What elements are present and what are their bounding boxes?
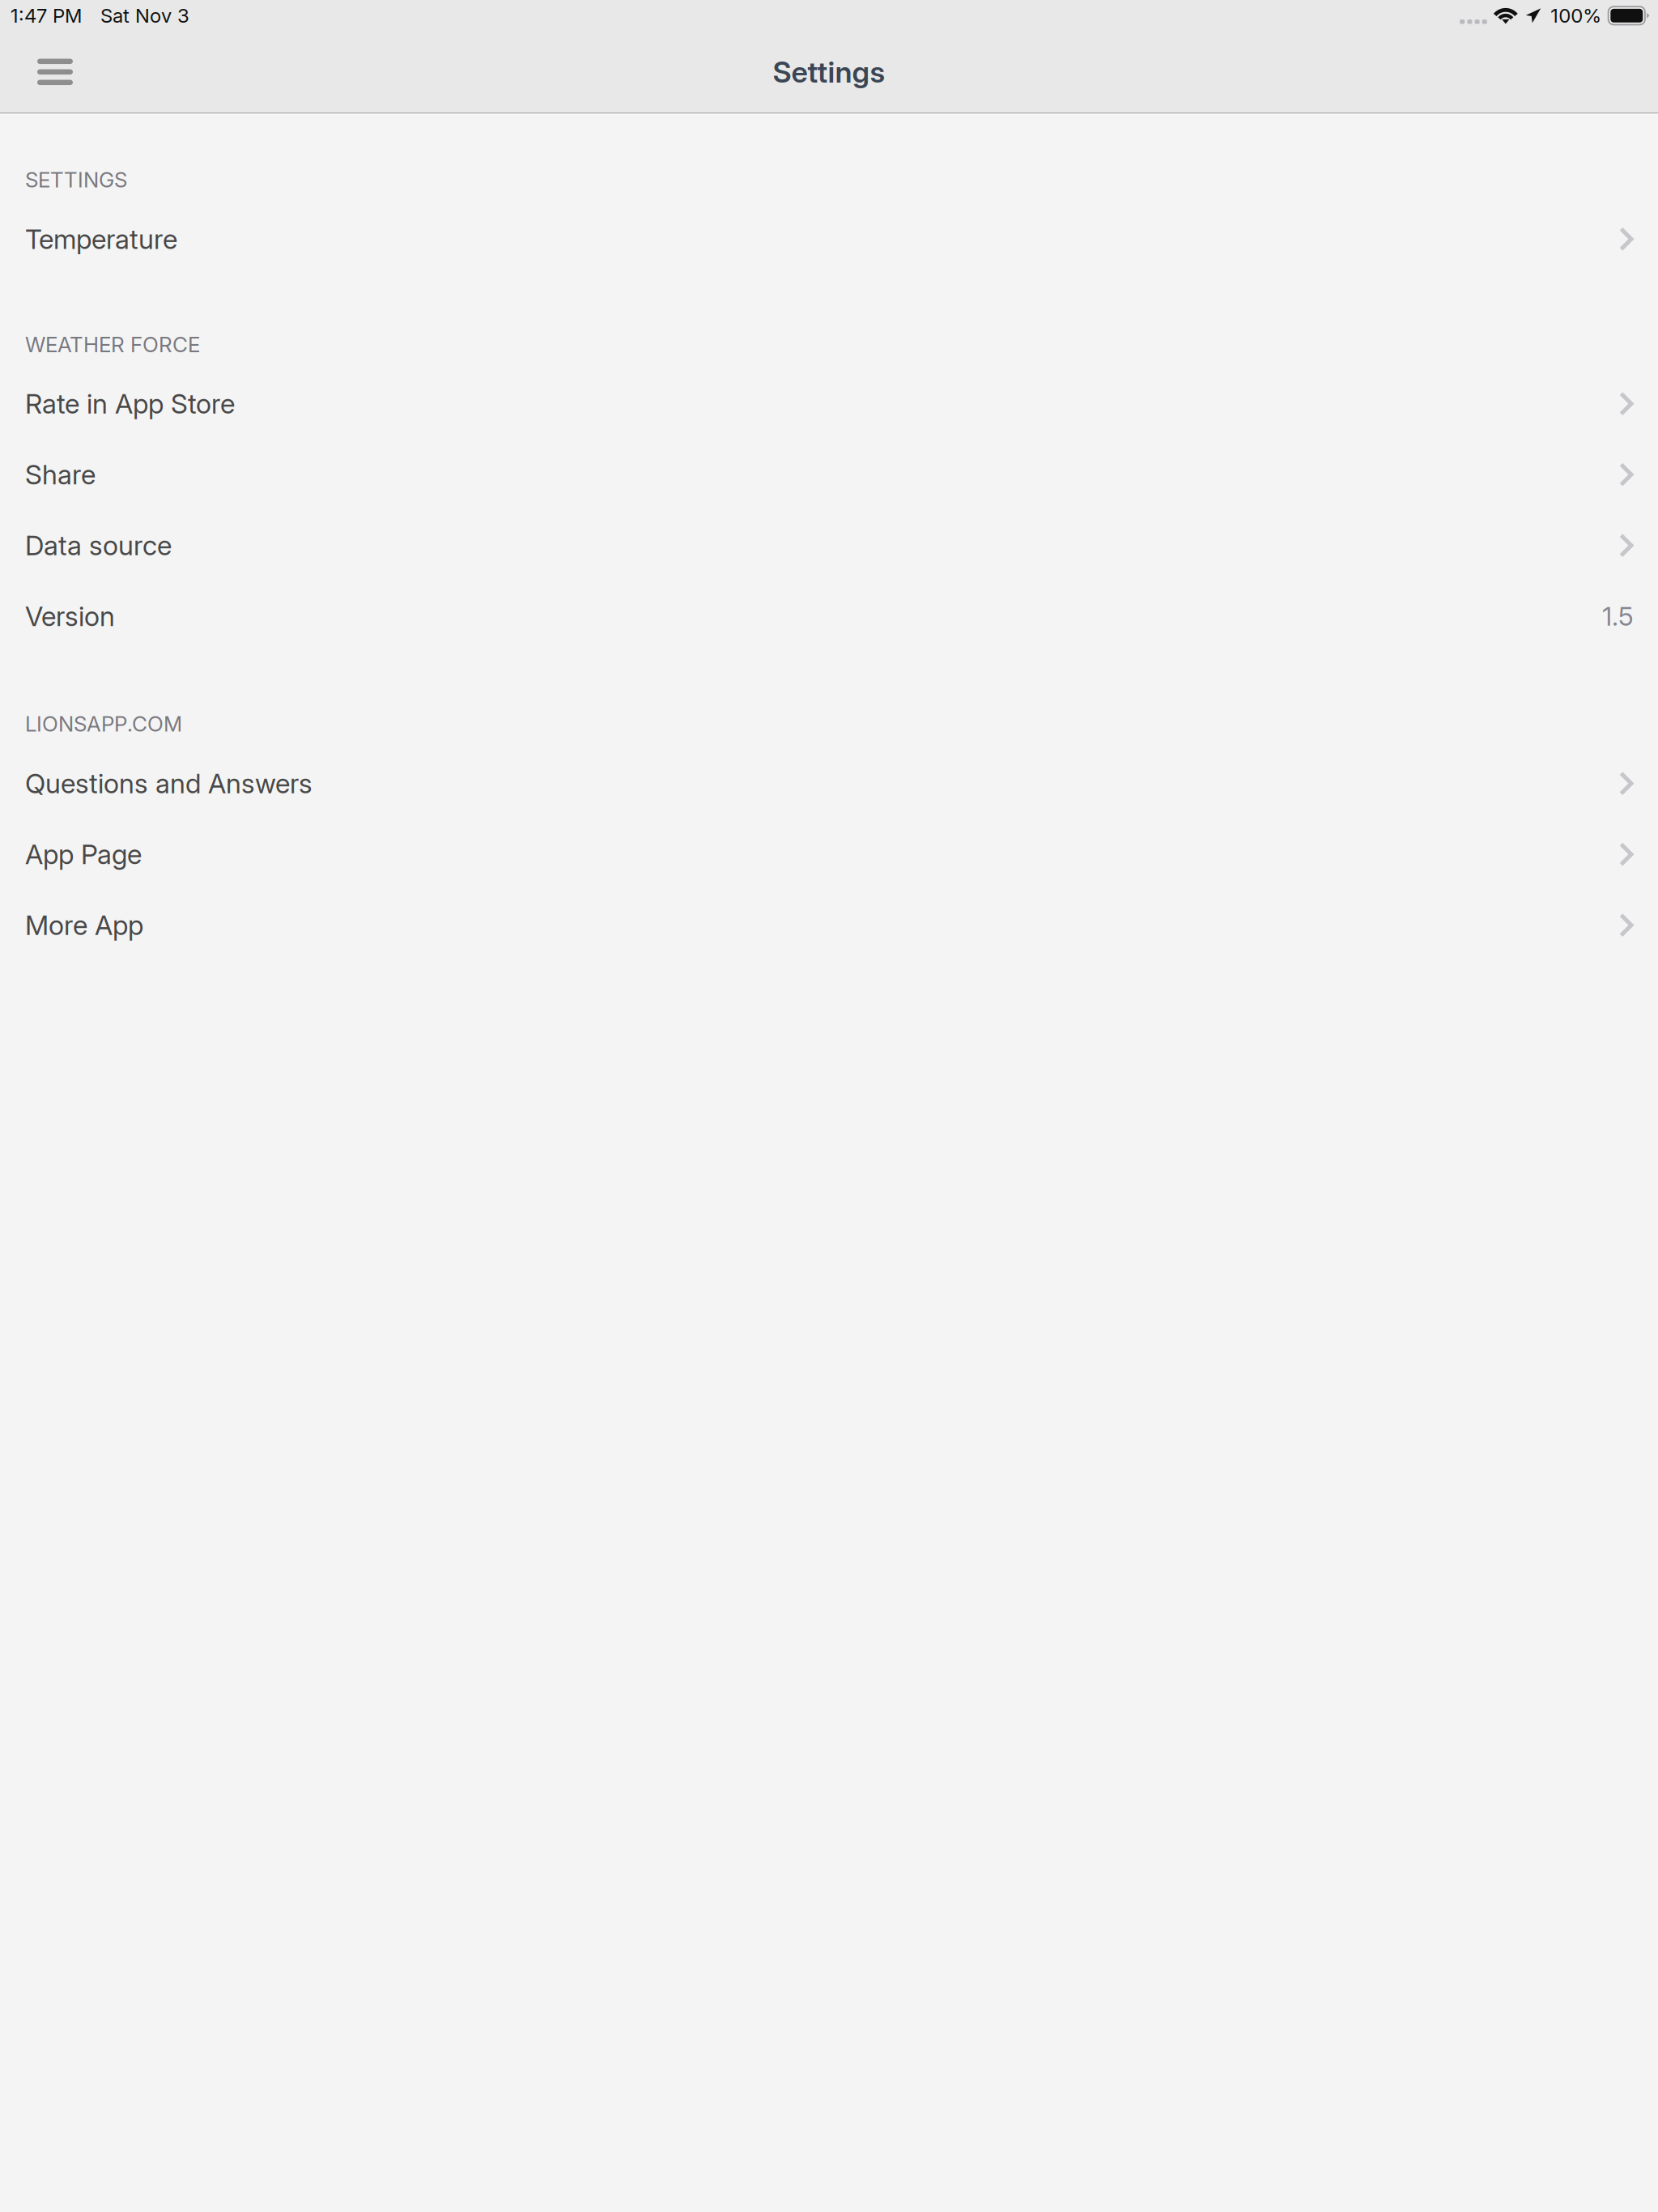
staticText: Sat Nov 3 — [100, 4, 189, 27]
button[interactable]: Questions and Answers — [0, 748, 1658, 819]
staticText: Share — [25, 458, 96, 491]
staticText: 100% — [1550, 4, 1601, 27]
button[interactable]: Menu — [18, 31, 92, 113]
staticText: Settings — [773, 54, 885, 90]
staticText: More App — [25, 909, 143, 941]
staticText: 1:47 PM — [11, 4, 82, 27]
staticText: SETTINGS — [25, 167, 127, 193]
button[interactable]: Rate in App Store — [0, 368, 1658, 439]
staticText: Rate in App Store — [25, 387, 235, 420]
staticText: App Page — [25, 838, 142, 871]
button[interactable]: Temperature — [0, 204, 1658, 274]
staticText: WEATHER FORCE — [25, 332, 200, 357]
staticText: Data source — [25, 529, 172, 562]
button[interactable]: App Page — [0, 819, 1658, 890]
staticText: 1.5 — [1602, 601, 1634, 632]
button[interactable]: Share — [0, 439, 1658, 510]
button[interactable]: More App — [0, 890, 1658, 961]
staticText: Temperature — [25, 223, 177, 255]
button[interactable]: Data source — [0, 510, 1658, 581]
staticText: Questions and Answers — [25, 767, 312, 800]
staticText: Version — [25, 600, 115, 633]
staticText: LIONSAPP.COM — [25, 711, 182, 737]
